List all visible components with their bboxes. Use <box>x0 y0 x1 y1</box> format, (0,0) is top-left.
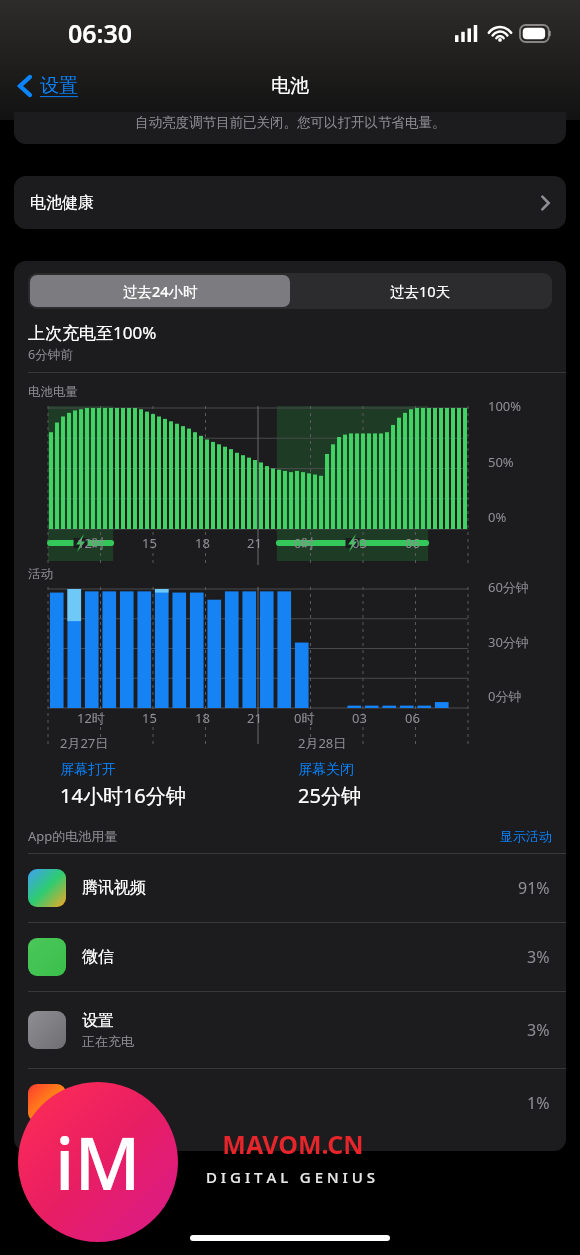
staticText: 过去10天 <box>390 281 451 301</box>
staticText: 06:30 <box>68 16 133 50</box>
staticText: 03 <box>352 709 367 727</box>
staticText: 屏幕打开 <box>60 761 116 779</box>
staticText: 12时 <box>77 709 105 727</box>
staticText: 屏幕关闭 <box>298 761 354 779</box>
staticText: 12时 <box>77 534 105 552</box>
staticText: 50% <box>488 453 514 471</box>
staticText: 3% <box>527 946 550 968</box>
staticText: iM <box>55 1113 141 1211</box>
staticText: 18 <box>195 534 210 552</box>
staticText: 0时 <box>294 709 315 727</box>
button[interactable]: 过去10天 <box>290 275 550 307</box>
staticText: 过去24小时 <box>123 281 198 301</box>
button[interactable]: 设置 <box>14 992 566 1068</box>
button[interactable]: 腾讯视频 <box>14 854 566 922</box>
staticText: 自动亮度调节目前已关闭。您可以打开以节省电量。 <box>135 114 446 131</box>
staticText: 06 <box>405 534 420 552</box>
staticText: 腾讯视频 <box>82 878 146 898</box>
staticText: 18 <box>195 709 210 727</box>
staticText: 1% <box>527 1092 550 1114</box>
staticText: MAVOM.CN <box>222 1127 364 1161</box>
staticText: 14小时16分钟 <box>60 782 186 809</box>
staticText: 电池 <box>271 74 309 98</box>
staticText: 15 <box>142 534 157 552</box>
staticText: D I G I T A L G E N I U S <box>206 1167 375 1187</box>
staticText: 电池电量 <box>28 384 78 400</box>
staticText: 0% <box>488 508 507 526</box>
staticText: 30分钟 <box>488 633 529 651</box>
staticText: 显示活动 <box>500 828 552 844</box>
staticText: 2月27日 <box>60 734 109 752</box>
button[interactable]: 设置 <box>14 70 82 102</box>
staticText: 25分钟 <box>298 782 361 809</box>
staticText: App的电池用量 <box>28 827 118 845</box>
staticText: 正在充电 <box>82 1033 134 1049</box>
button[interactable]: 过去24小时 <box>30 275 290 307</box>
button[interactable]: 电池健康 <box>14 176 566 229</box>
staticText: 上次充电至100% <box>28 321 157 344</box>
staticText: 60分钟 <box>488 578 529 596</box>
button[interactable]: 照片 <box>14 1069 566 1137</box>
staticText: 3% <box>527 1019 550 1041</box>
staticText: 15 <box>142 709 157 727</box>
staticText: 03 <box>352 534 367 552</box>
staticText: 06 <box>405 709 420 727</box>
staticText: 21 <box>247 534 262 552</box>
button[interactable]: 自动亮度调节目前已关闭。您可以打开以节省电量。 <box>14 112 566 144</box>
staticText: 电池健康 <box>30 193 94 213</box>
staticText: 活动 <box>28 566 53 582</box>
staticText: 设置 <box>40 74 78 98</box>
button[interactable]: 微信 <box>14 923 566 991</box>
staticText: 2月28日 <box>298 734 347 752</box>
staticText: 91% <box>518 877 550 899</box>
staticText: 6分钟前 <box>28 346 73 363</box>
staticText: 微信 <box>82 947 114 967</box>
staticText: 100% <box>488 397 522 415</box>
staticText: 设置 <box>82 1011 114 1031</box>
staticText: 0分钟 <box>488 687 522 705</box>
button[interactable]: 显示活动 <box>500 828 552 844</box>
staticText: 0时 <box>294 534 315 552</box>
staticText: 21 <box>247 709 262 727</box>
